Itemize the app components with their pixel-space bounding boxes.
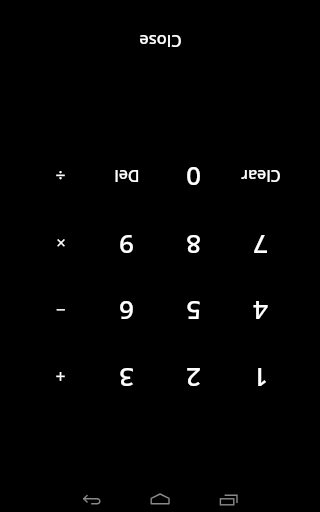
staticText: Close <box>139 31 182 53</box>
button[interactable]: Recent apps <box>194 480 262 512</box>
staticText: 8 <box>186 228 201 263</box>
button[interactable]: − <box>27 276 94 343</box>
button[interactable]: 2 <box>160 343 227 410</box>
staticText: ÷ <box>55 164 66 188</box>
button[interactable]: 1 <box>227 343 294 410</box>
staticText: 6 <box>119 294 134 329</box>
button[interactable]: 6 <box>93 276 160 343</box>
staticText: Del <box>114 165 140 187</box>
staticText: Clear <box>241 165 281 187</box>
button[interactable]: Del <box>93 142 160 209</box>
button[interactable]: 3 <box>93 343 160 410</box>
button[interactable]: × <box>27 210 94 277</box>
button[interactable]: + <box>27 343 94 410</box>
button[interactable]: 9 <box>93 210 160 277</box>
button[interactable]: Back <box>58 480 126 512</box>
button[interactable]: 5 <box>160 276 227 343</box>
button[interactable]: 7 <box>227 210 294 277</box>
button[interactable]: 4 <box>227 276 294 343</box>
staticText: 9 <box>119 228 134 263</box>
staticText: 7 <box>253 228 268 263</box>
button[interactable]: Clear <box>227 142 294 209</box>
staticText: × <box>56 233 66 255</box>
staticText: 5 <box>186 294 201 329</box>
button[interactable]: 8 <box>160 210 227 277</box>
staticText: 3 <box>119 361 134 396</box>
staticText: + <box>55 365 66 389</box>
staticText: 1 <box>253 361 268 396</box>
staticText: 2 <box>186 361 201 396</box>
staticText: − <box>56 299 66 322</box>
staticText: 4 <box>253 294 268 329</box>
button[interactable]: Home <box>126 480 194 512</box>
staticText: 0 <box>186 160 201 195</box>
button[interactable]: ÷ <box>27 142 94 209</box>
button[interactable]: Close <box>94 19 226 65</box>
button[interactable]: 0 <box>160 142 227 209</box>
